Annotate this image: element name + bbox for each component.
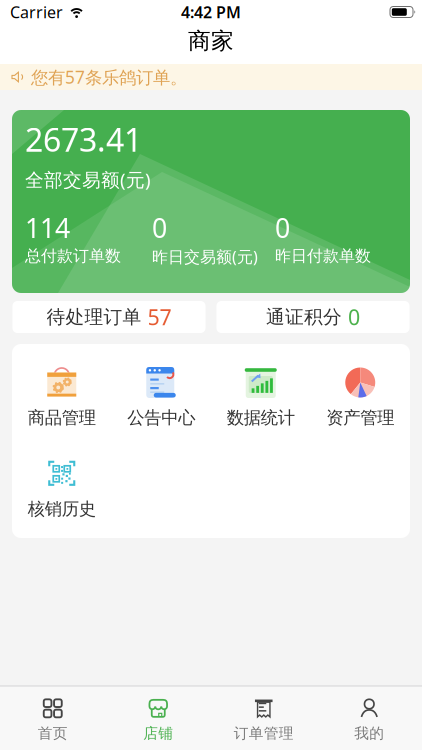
staticText: 公告中心 xyxy=(127,407,195,428)
staticText: 0 xyxy=(152,210,167,245)
staticText: 昨日交易额(元) xyxy=(152,246,258,267)
staticText: 我的 xyxy=(354,724,384,742)
button[interactable]: 您有57条乐鸽订单。 xyxy=(0,64,422,90)
staticText: 昨日付款单数 xyxy=(275,246,371,266)
staticText: 4:42 PM xyxy=(181,1,241,23)
staticText: 首页 xyxy=(38,724,68,742)
button[interactable]: 商品管理 xyxy=(12,365,111,428)
staticText: 商品管理 xyxy=(28,407,96,428)
staticText: 商家 xyxy=(188,27,234,55)
button[interactable]: 通证积分 xyxy=(216,301,409,333)
staticText: 0 xyxy=(348,303,360,331)
staticText: 57 xyxy=(147,303,171,331)
staticText: 2673.41 xyxy=(25,118,142,160)
staticText: 订单管理 xyxy=(234,724,294,742)
staticText: 0 xyxy=(275,210,290,245)
staticText: 您有57条乐鸽订单。 xyxy=(31,65,187,88)
staticText: 待处理订单 xyxy=(46,305,141,328)
staticText: 总付款订单数 xyxy=(25,246,121,266)
button[interactable]: 店铺 xyxy=(105,696,211,742)
staticText: 全部交易额(元) xyxy=(25,167,151,192)
staticText: 数据统计 xyxy=(227,407,295,428)
button[interactable]: 订单管理 xyxy=(211,696,316,742)
button[interactable]: 待处理订单 xyxy=(12,301,205,333)
staticText: 核销历史 xyxy=(28,498,96,520)
button[interactable]: 资产管理 xyxy=(310,365,410,428)
button[interactable]: 我的 xyxy=(316,696,422,742)
button[interactable]: 首页 xyxy=(0,696,105,742)
button[interactable]: 公告中心 xyxy=(111,365,211,428)
staticText: Carrier xyxy=(10,1,63,23)
button[interactable]: 核销历史 xyxy=(12,456,111,520)
staticText: 店铺 xyxy=(143,724,173,742)
button[interactable]: 数据统计 xyxy=(211,365,310,428)
staticText: 通证积分 xyxy=(266,305,342,328)
staticText: 114 xyxy=(25,210,70,245)
staticText: 资产管理 xyxy=(326,407,394,428)
